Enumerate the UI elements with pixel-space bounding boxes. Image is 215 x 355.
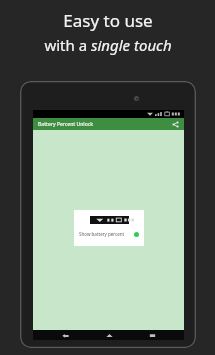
staticText: Show battery percent — [79, 231, 125, 237]
button[interactable]: Recents — [141, 330, 163, 340]
button[interactable]: Battery Percent Unlock — [33, 118, 184, 130]
button[interactable]: Share — [169, 118, 181, 130]
staticText: Battery Percent Unlock — [38, 121, 93, 128]
staticText: with a single touch — [44, 35, 172, 55]
button[interactable]: Show battery percent — [74, 210, 144, 246]
button[interactable]: Home — [98, 330, 120, 340]
button[interactable]: Back — [54, 330, 76, 340]
other: Toggle — [134, 232, 139, 237]
staticText: Easy to use — [63, 9, 153, 32]
button[interactable]: Show battery percent — [79, 231, 139, 237]
